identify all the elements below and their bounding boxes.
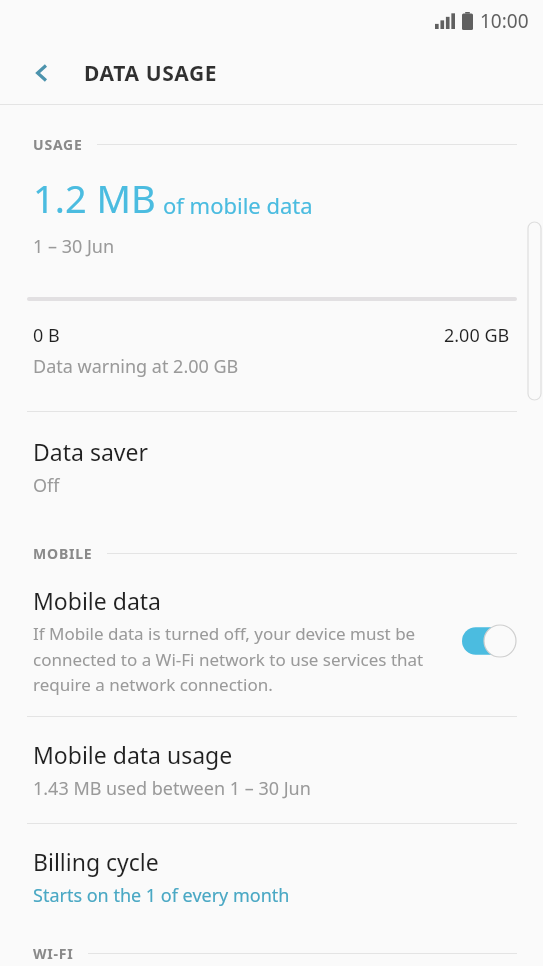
staticText: Starts on the 1 of every month <box>33 883 290 908</box>
staticText: 2.00 GB <box>444 323 510 348</box>
button[interactable]: Mobile data toggle <box>461 621 517 661</box>
staticText: 1 – 30 Jun <box>33 234 115 259</box>
staticText: Data warning at 2.00 GB <box>33 354 239 379</box>
staticText: 0 B <box>33 323 60 348</box>
button[interactable]: Mobile data usage <box>0 717 543 823</box>
staticText: Billing cycle <box>33 846 159 877</box>
staticText: USAGE <box>33 135 83 154</box>
button[interactable]: Back <box>18 49 66 97</box>
staticText: DATA USAGE <box>84 59 218 88</box>
button[interactable]: Data saver <box>0 412 543 522</box>
staticText: If Mobile data is turned off, your devic… <box>33 622 443 696</box>
staticText: WI-FI <box>33 944 74 963</box>
staticText: Mobile data usage <box>33 739 233 770</box>
staticText: 10:00 <box>480 8 529 34</box>
button[interactable]: Mobile data <box>0 563 543 716</box>
staticText: 1.2 MB <box>33 172 156 224</box>
staticText: Off <box>33 473 60 498</box>
staticText: Mobile data <box>33 585 161 616</box>
staticText: of mobile data <box>163 190 313 220</box>
staticText: 1.43 MB used between 1 – 30 Jun <box>33 776 311 801</box>
staticText: MOBILE <box>33 544 93 563</box>
staticText: Data saver <box>33 436 148 467</box>
button[interactable]: Billing cycle <box>0 824 543 930</box>
